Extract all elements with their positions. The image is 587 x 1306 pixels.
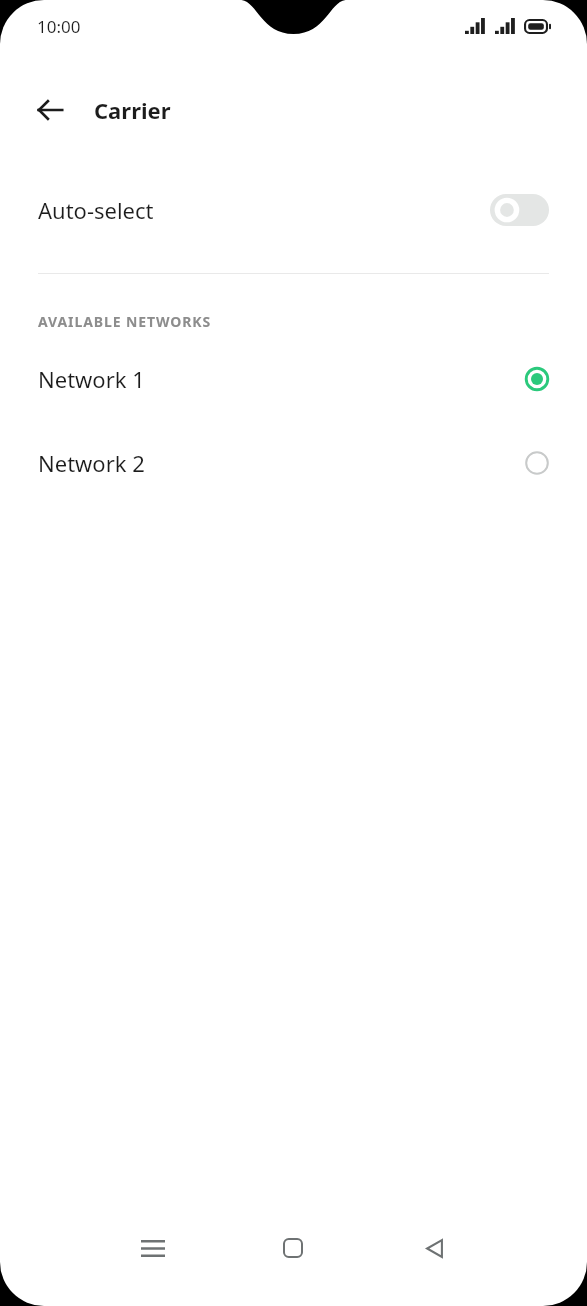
button[interactable]: Recent apps xyxy=(129,1224,177,1272)
staticText: 10:00 xyxy=(37,15,81,38)
button[interactable]: Back xyxy=(26,86,74,134)
staticText: Network 1 xyxy=(38,364,525,394)
button[interactable]: Auto-select xyxy=(0,181,587,239)
button[interactable]: Auto-select toggle xyxy=(490,194,549,226)
staticText: Carrier xyxy=(94,95,171,125)
staticText: Auto-select xyxy=(38,195,490,225)
button[interactable]: Home xyxy=(269,1224,317,1272)
staticText: Network 2 xyxy=(38,448,525,478)
button[interactable]: Back xyxy=(410,1224,458,1272)
button[interactable]: Network 2 xyxy=(0,442,587,484)
staticText: AVAILABLE NETWORKS xyxy=(38,312,212,331)
button[interactable]: Network 1 xyxy=(0,358,587,400)
